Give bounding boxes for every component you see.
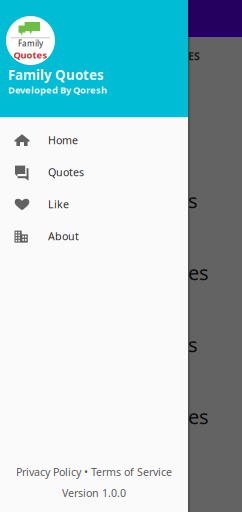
staticText: Family Quotes xyxy=(8,66,104,84)
staticText: Developed By Qoresh xyxy=(8,84,107,96)
staticText: s xyxy=(188,187,198,214)
button[interactable]: Quotes xyxy=(0,156,188,188)
staticText: Privacy Policy • Terms of Service xyxy=(16,465,172,479)
staticText: Quotes xyxy=(48,165,84,179)
button[interactable]: Home xyxy=(0,124,188,156)
staticText: s xyxy=(188,331,198,358)
staticText: About xyxy=(48,229,79,243)
button[interactable]: Privacy Policy • Terms of Service xyxy=(16,465,172,479)
staticText: es xyxy=(188,259,209,286)
staticText: Home xyxy=(48,133,78,147)
button[interactable]: About xyxy=(0,220,188,252)
staticText: Family xyxy=(18,38,43,49)
staticText: Like xyxy=(48,197,69,211)
staticText: es xyxy=(188,403,209,430)
button[interactable]: Like xyxy=(0,188,188,220)
staticText: Version 1.0.0 xyxy=(62,486,126,500)
staticText: ES xyxy=(188,49,200,63)
staticText: Quotes xyxy=(13,49,47,61)
